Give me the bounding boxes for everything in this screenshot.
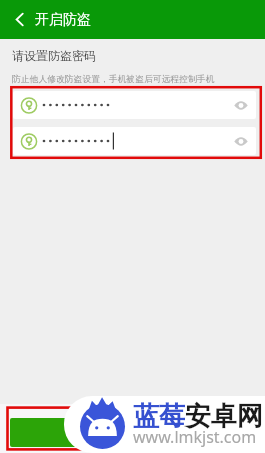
button[interactable]: 完成 — [10, 418, 256, 447]
staticText: 安卓网 — [185, 400, 263, 433]
staticText: 完成 — [120, 425, 146, 441]
staticText: 防止他人修改防盗设置，手机被盗后可远程控制手机 — [12, 74, 215, 85]
staticText: www.lmkjst.com — [133, 426, 257, 448]
button[interactable]: Show password — [225, 91, 256, 119]
staticText: 请设置防盗密码 — [12, 48, 96, 63]
staticText: 蓝莓 — [133, 400, 185, 433]
button[interactable]: Show password — [225, 127, 256, 155]
button[interactable]: Back — [0, 0, 33, 39]
button[interactable]: Show password — [13, 127, 256, 155]
staticText: 开启防盗 — [35, 11, 91, 29]
button[interactable]: Show password — [13, 91, 256, 119]
